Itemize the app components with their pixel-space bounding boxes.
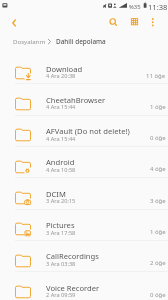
button[interactable] bbox=[0, 151, 168, 182]
button[interactable] bbox=[0, 276, 168, 300]
staticText: DCIM bbox=[46, 189, 146, 199]
staticText: Android bbox=[46, 157, 146, 167]
staticText: Voice Recorder bbox=[46, 283, 146, 293]
staticText: 1 öğe bbox=[150, 228, 166, 236]
staticText: %35 bbox=[129, 3, 141, 11]
button[interactable] bbox=[0, 245, 168, 276]
button[interactable] bbox=[0, 120, 168, 151]
button[interactable]: Back bbox=[3, 14, 21, 32]
button[interactable] bbox=[0, 214, 168, 245]
staticText: 0 öğe bbox=[150, 134, 166, 142]
staticText: 2 Ara 09:59 bbox=[46, 291, 76, 299]
button[interactable] bbox=[0, 182, 168, 213]
button[interactable]: Dosyalarım bbox=[13, 37, 46, 45]
staticText: 4 öğe bbox=[150, 165, 166, 173]
staticText: 11:38 bbox=[148, 2, 168, 12]
button[interactable]: More options bbox=[145, 13, 161, 29]
staticText: Download bbox=[46, 64, 146, 74]
staticText: 3 Ara 17:58 bbox=[46, 229, 76, 237]
staticText: 11 öğe bbox=[146, 72, 166, 80]
staticText: Pictures bbox=[46, 220, 146, 230]
button[interactable]: Dahili depolama bbox=[56, 37, 106, 46]
staticText: 3 Ara 03:38 bbox=[46, 260, 76, 268]
staticText: CallRecordings bbox=[46, 251, 146, 261]
button[interactable] bbox=[0, 88, 168, 119]
staticText: 4 Ara 20:38 bbox=[46, 72, 76, 80]
staticText: 3 Ara 20:15 bbox=[46, 197, 76, 205]
staticText: 1 öğe bbox=[150, 103, 166, 111]
staticText: 3 öğe bbox=[150, 197, 166, 205]
staticText: AFVault (Do not delete!) bbox=[46, 126, 146, 136]
staticText: CheetahBrowser bbox=[46, 95, 146, 105]
button[interactable]: Grid view bbox=[125, 13, 143, 31]
staticText: 4 Ara 15:44 bbox=[46, 135, 76, 143]
staticText: 4 Ara 10:58 bbox=[46, 166, 76, 174]
button[interactable] bbox=[0, 57, 168, 88]
button[interactable]: Search bbox=[104, 13, 122, 31]
staticText: 0 öğe bbox=[150, 291, 166, 299]
staticText: 4 Ara 15:44 bbox=[46, 103, 76, 111]
staticText: 2 öğe bbox=[150, 259, 166, 267]
